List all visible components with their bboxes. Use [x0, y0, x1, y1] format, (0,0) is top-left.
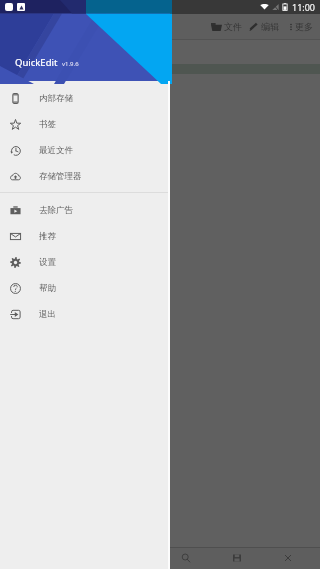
- staticText: 更多: [295, 21, 313, 32]
- staticText: 最近文件: [39, 145, 73, 156]
- button[interactable]: 存储管理器: [0, 163, 170, 189]
- staticText: 推荐: [39, 231, 56, 242]
- button[interactable]: 最近文件: [0, 137, 170, 163]
- staticText: v1.9.6: [62, 60, 79, 68]
- button[interactable]: 退出: [0, 301, 170, 327]
- staticText: 存储管理器: [39, 171, 82, 182]
- button[interactable]: 帮助: [0, 275, 170, 301]
- staticText: 去除广告: [39, 205, 73, 216]
- button[interactable]: Save: [218, 547, 256, 569]
- staticText: 帮助: [39, 283, 56, 294]
- button[interactable]: 书签: [0, 111, 170, 137]
- button[interactable]: 更多: [289, 21, 313, 32]
- staticText: QuickEdit: [15, 56, 58, 69]
- button[interactable]: 编辑: [248, 21, 279, 32]
- button[interactable]: Search: [167, 547, 205, 569]
- button[interactable]: 去除广告: [0, 197, 170, 223]
- staticText: 书签: [39, 119, 56, 130]
- staticText: 编辑: [261, 21, 279, 32]
- staticText: 11:00: [292, 1, 316, 13]
- button[interactable]: 推荐: [0, 223, 170, 249]
- staticText: 设置: [39, 257, 56, 268]
- staticText: 文件: [224, 21, 242, 32]
- button[interactable]: Close: [269, 547, 307, 569]
- staticText: 内部存储: [39, 93, 73, 104]
- button[interactable]: 文件: [211, 21, 242, 32]
- button[interactable]: 设置: [0, 249, 170, 275]
- button[interactable]: 内部存储: [0, 85, 170, 111]
- staticText: 退出: [39, 309, 56, 320]
